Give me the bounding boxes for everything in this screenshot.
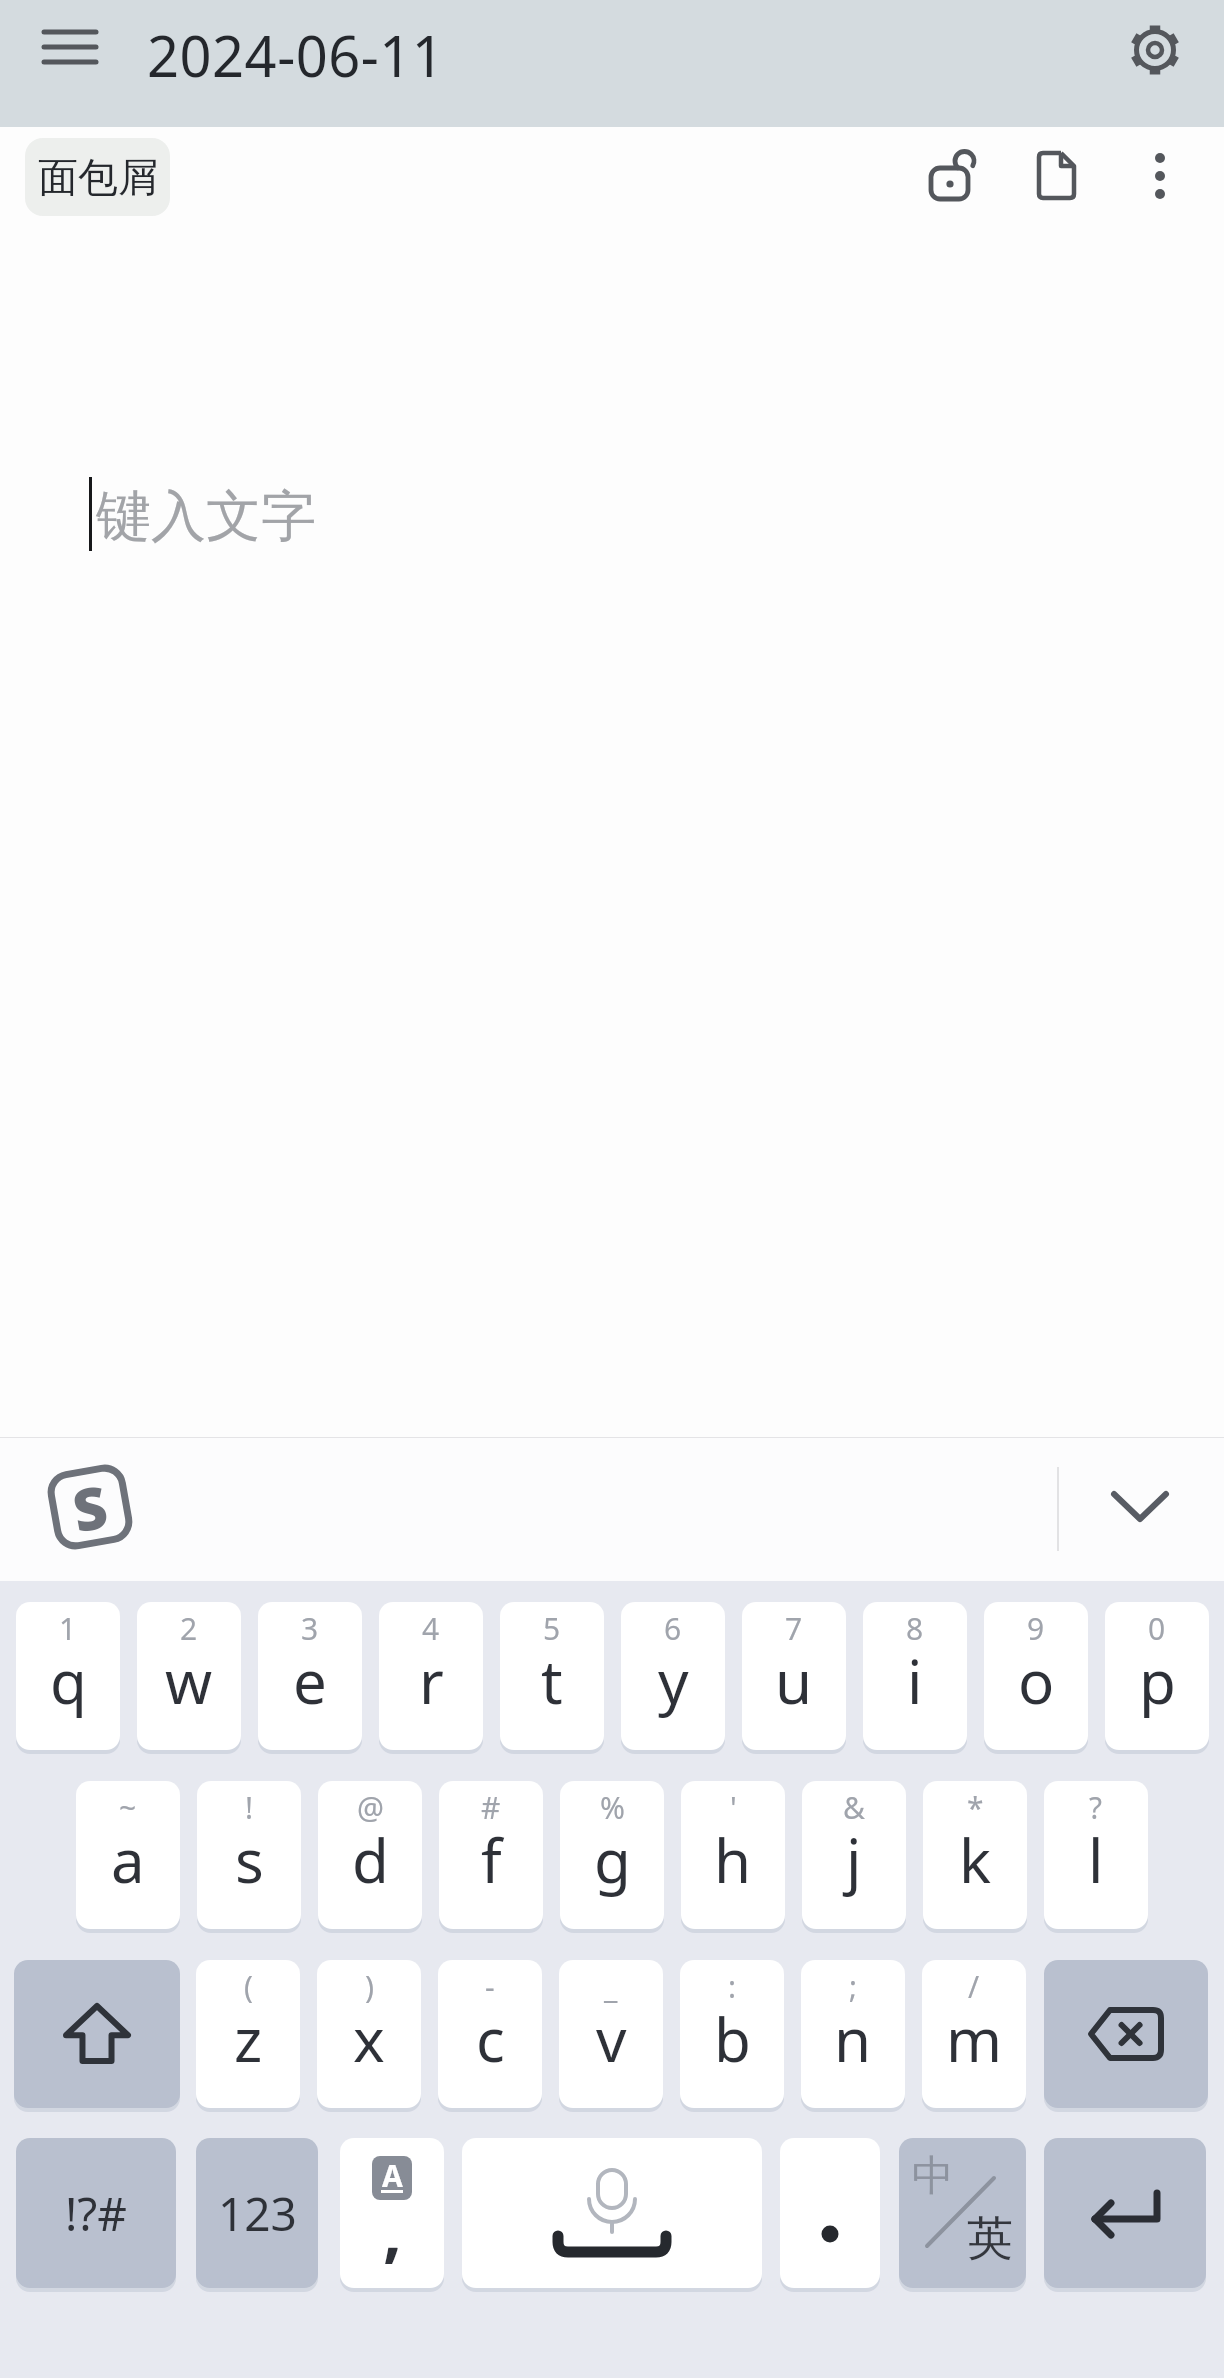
staticText: t [541,1640,563,1722]
button[interactable]: A [340,2138,444,2288]
button[interactable]: 1 [16,1602,120,1750]
staticText: c [476,1998,505,2080]
staticText: : [728,1966,737,2007]
button[interactable]: 8 [863,1602,967,1750]
staticText: / [968,1966,980,2007]
staticText: l [1088,1819,1104,1901]
staticText: g [594,1819,631,1901]
staticText: 6 [664,1608,682,1649]
button[interactable]: ? [1044,1781,1148,1929]
button[interactable]: ! [197,1781,301,1929]
button[interactable]: / [922,1960,1026,2108]
staticText: 5 [543,1608,561,1649]
staticText: i [907,1640,923,1722]
button[interactable]: % [560,1781,664,1929]
button[interactable]: S [44,1461,136,1553]
button[interactable]: 7 [742,1602,846,1750]
staticText: 3 [301,1608,319,1649]
staticText: 键入文字 [96,482,316,551]
button[interactable]: 123 [196,2138,318,2288]
staticText: 9 [1027,1608,1045,1649]
button[interactable]: _ [559,1960,663,2108]
staticText: @ [357,1787,384,1828]
button[interactable]: ~ [76,1781,180,1929]
staticText: , [383,2184,402,2274]
staticText: s [235,1819,264,1901]
staticText: f [481,1819,502,1901]
staticText: ; [849,1966,858,2007]
staticText: z [234,1998,263,2080]
staticText: # [481,1787,501,1828]
staticText: 2024-06-11 [147,17,445,93]
button[interactable]: * [923,1781,1027,1929]
button[interactable]: ) [317,1960,421,2108]
staticText: d [352,1819,389,1901]
staticText: * [967,1787,984,1828]
staticText: o [1018,1640,1055,1722]
button[interactable]: ' [681,1781,785,1929]
button[interactable] [1100,1477,1180,1541]
staticText: 4 [422,1608,440,1649]
staticText: !?# [65,2182,128,2245]
button[interactable]: 6 [621,1602,725,1750]
button[interactable] [44,28,96,70]
staticText: n [834,1998,872,2080]
staticText: 1 [59,1608,77,1649]
staticText: 8 [906,1608,924,1649]
staticText: S [66,1466,114,1549]
staticText: m [946,1998,1003,2080]
staticText: j [846,1819,862,1901]
staticText: 2 [180,1608,198,1649]
staticText: b [714,1998,751,2080]
staticText: ! [245,1787,254,1828]
staticText: 7 [785,1608,803,1649]
staticText: y [658,1640,689,1722]
button[interactable]: 9 [984,1602,1088,1750]
staticText: ' [730,1787,737,1828]
staticText: ( [244,1966,253,2007]
staticText: v [596,1998,627,2080]
button[interactable] [1026,140,1088,208]
button[interactable]: - [438,1960,542,2108]
staticText: 123 [218,2182,297,2245]
button[interactable]: 5 [500,1602,604,1750]
button[interactable] [780,2138,880,2288]
button[interactable] [1122,17,1188,83]
button[interactable]: & [802,1781,906,1929]
staticText: k [959,1819,992,1901]
staticText: 英 [967,2210,1013,2268]
staticText: - [485,1966,495,2007]
button[interactable]: 2 [137,1602,241,1750]
button[interactable]: ; [801,1960,905,2108]
staticText: % [600,1787,625,1828]
button[interactable]: 0 [1105,1602,1209,1750]
staticText: x [353,1998,385,2080]
staticText: 面包屑 [38,152,158,202]
button[interactable]: : [680,1960,784,2108]
button[interactable]: 3 [258,1602,362,1750]
staticText: w [165,1640,213,1722]
button[interactable] [1044,2138,1206,2288]
staticText: p [1139,1640,1176,1722]
staticText: 中 [912,2150,954,2203]
button[interactable]: ( [196,1960,300,2108]
button[interactable]: 面包屑 [25,138,170,216]
staticText: ) [365,1966,374,2007]
button[interactable]: 4 [379,1602,483,1750]
staticText: u [775,1640,813,1722]
staticText: a [111,1819,145,1901]
button[interactable] [1136,140,1184,208]
staticText: _ [604,1966,618,2007]
button[interactable] [462,2138,762,2288]
button[interactable]: 中 [899,2138,1026,2288]
button[interactable]: @ [318,1781,422,1929]
button[interactable] [14,1960,180,2108]
staticText: h [714,1819,752,1901]
button[interactable] [1044,1960,1208,2108]
staticText: ~ [119,1787,137,1828]
staticText: r [419,1640,444,1722]
button[interactable]: # [439,1781,543,1929]
staticText: 0 [1148,1608,1166,1649]
button[interactable]: !?# [16,2138,176,2288]
button[interactable] [920,140,984,208]
